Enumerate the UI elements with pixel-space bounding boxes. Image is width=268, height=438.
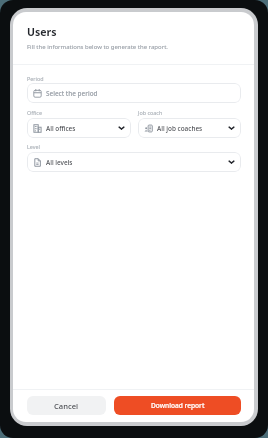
button[interactable]: All offices [27,118,131,138]
staticText: Level [27,143,40,150]
button[interactable]: Download report [114,396,241,415]
staticText: Cancel [54,401,79,411]
staticText: All offices [46,124,76,133]
staticText: All job coaches [157,124,203,133]
staticText: Job coach [138,109,163,116]
staticText: Fill the informations below to generate … [27,43,168,51]
staticText: Users [27,25,57,39]
staticText: Office [27,109,42,116]
staticText: All levels [46,158,73,167]
staticText: Select the period [46,89,98,98]
button[interactable]: All levels [27,152,241,172]
staticText: Period [27,75,44,82]
staticText: Download report [151,401,205,410]
button[interactable]: Select the period [27,83,241,103]
button[interactable]: Cancel [27,396,106,415]
button[interactable]: All job coaches [138,118,241,138]
